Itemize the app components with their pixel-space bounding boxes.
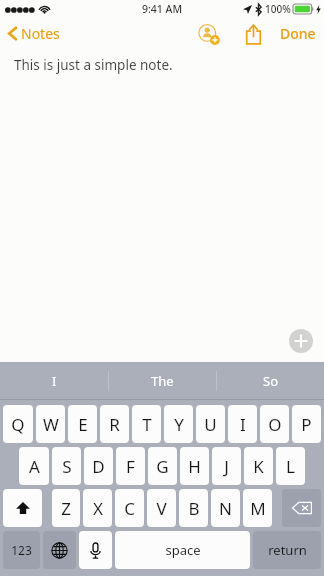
button[interactable]: Dictate xyxy=(79,531,112,569)
button[interactable]: return xyxy=(253,531,321,569)
button[interactable]: space xyxy=(115,531,250,569)
button[interactable]: The xyxy=(109,362,216,400)
staticText: 123 xyxy=(11,542,32,558)
button[interactable]: Done xyxy=(272,20,324,47)
staticText: D xyxy=(92,455,105,478)
staticText: P xyxy=(301,413,312,436)
staticText: This is just a simple note. xyxy=(14,56,173,74)
staticText: E xyxy=(78,413,88,436)
button[interactable]: Shift xyxy=(3,489,42,527)
staticText: J xyxy=(224,455,229,478)
button[interactable]: H xyxy=(180,447,209,485)
button[interactable]: V xyxy=(147,489,176,527)
staticText: A xyxy=(29,455,40,478)
staticText: N xyxy=(219,497,232,520)
button[interactable]: I xyxy=(0,362,108,400)
button[interactable]: L xyxy=(276,447,305,485)
staticText: X xyxy=(93,497,103,520)
staticText: Done xyxy=(280,24,316,43)
button[interactable]: Add people xyxy=(194,21,224,47)
staticText: return xyxy=(268,541,307,559)
button[interactable]: Y xyxy=(164,405,193,443)
staticText: O xyxy=(268,413,282,436)
button[interactable]: Notes xyxy=(0,20,68,47)
staticText: Z xyxy=(61,497,71,520)
button[interactable]: D xyxy=(84,447,113,485)
button[interactable]: N xyxy=(211,489,240,527)
staticText: Q xyxy=(11,413,25,436)
button[interactable]: So xyxy=(217,362,324,400)
button[interactable]: Q xyxy=(3,405,33,443)
button[interactable]: C xyxy=(115,489,144,527)
staticText: I xyxy=(52,372,57,390)
button[interactable]: K xyxy=(244,447,273,485)
button[interactable]: J xyxy=(212,447,241,485)
button[interactable]: F xyxy=(116,447,145,485)
button[interactable]: U xyxy=(196,405,225,443)
button[interactable]: 123 xyxy=(3,531,40,569)
staticText: I xyxy=(240,413,246,436)
staticText: K xyxy=(253,455,264,478)
button[interactable]: E xyxy=(68,405,97,443)
button[interactable]: Backspace xyxy=(282,489,321,527)
button[interactable]: A xyxy=(19,447,49,485)
button[interactable]: X xyxy=(83,489,112,527)
button[interactable]: Switch keyboard xyxy=(43,531,76,569)
button[interactable]: M xyxy=(243,489,272,527)
staticText: W xyxy=(43,413,59,436)
button[interactable]: R xyxy=(100,405,129,443)
staticText: V xyxy=(156,497,167,520)
button[interactable]: O xyxy=(260,405,289,443)
staticText: G xyxy=(156,455,169,478)
button[interactable]: T xyxy=(132,405,161,443)
staticText: M xyxy=(250,497,266,520)
button[interactable]: Z xyxy=(52,489,80,527)
staticText: C xyxy=(124,497,135,520)
staticText: R xyxy=(109,413,120,436)
button[interactable]: Share xyxy=(240,21,266,47)
staticText: Notes xyxy=(21,24,60,43)
button[interactable]: B xyxy=(179,489,208,527)
button[interactable]: W xyxy=(36,405,65,443)
staticText: The xyxy=(151,372,174,390)
staticText: space xyxy=(165,541,201,559)
staticText: S xyxy=(62,455,72,478)
button[interactable]: S xyxy=(52,447,81,485)
staticText: T xyxy=(142,413,152,436)
staticText: H xyxy=(188,455,201,478)
button[interactable]: G xyxy=(148,447,177,485)
staticText: Y xyxy=(174,413,184,436)
staticText: So xyxy=(263,372,279,390)
staticText: 9:41 AM xyxy=(142,2,183,16)
staticText: U xyxy=(204,413,217,436)
button[interactable]: P xyxy=(292,405,321,443)
staticText: 100% xyxy=(265,2,291,16)
button[interactable]: Add attachment xyxy=(289,329,313,353)
staticText: L xyxy=(286,455,295,478)
staticText: F xyxy=(126,455,135,478)
staticText: B xyxy=(188,497,200,520)
button[interactable]: I xyxy=(228,405,257,443)
